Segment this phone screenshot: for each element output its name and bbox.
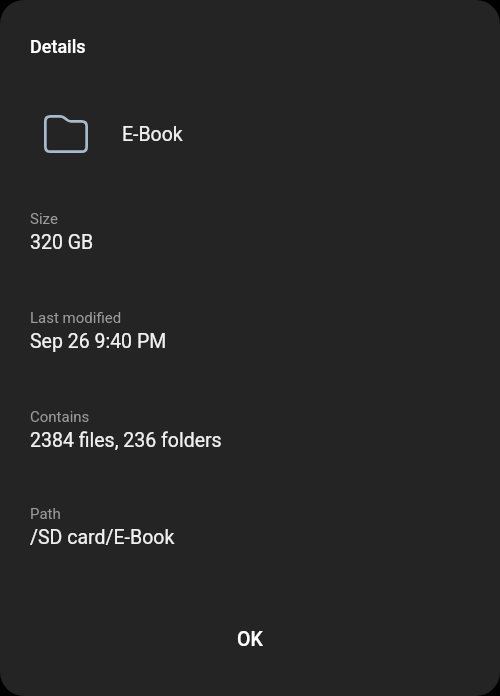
staticText: /SD card/E-Book: [30, 526, 175, 549]
staticText: 2384 files, 236 folders: [30, 429, 222, 452]
button[interactable]: Folder: [0, 115, 500, 153]
staticText: 320 GB: [30, 231, 94, 254]
staticText: OK: [237, 628, 263, 651]
staticText: Details: [30, 36, 86, 57]
staticText: Sep 26 9:40 PM: [30, 330, 167, 353]
staticText: Size: [30, 210, 58, 228]
staticText: Last modified: [30, 309, 122, 327]
button[interactable]: OK: [211, 622, 289, 657]
staticText: E-Book: [122, 123, 183, 146]
staticText: Contains: [30, 408, 90, 426]
staticText: Path: [30, 505, 61, 523]
other: Folder: [44, 115, 88, 153]
